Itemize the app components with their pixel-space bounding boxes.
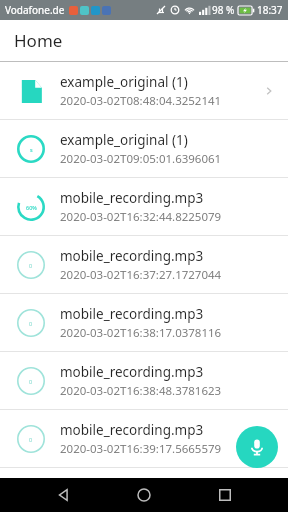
other: Open xyxy=(260,82,278,100)
button[interactable]: 0 xyxy=(0,410,288,468)
staticText: 18:37 xyxy=(257,3,283,17)
staticText: 2020-03-02T16:32:44.8225079 xyxy=(60,209,222,225)
button[interactable]: Back xyxy=(47,478,81,512)
button[interactable]: 0 xyxy=(0,294,288,352)
staticText: Home xyxy=(14,29,63,52)
staticText: example_original (1) xyxy=(60,131,188,149)
staticText: mobile_recording.mp3 xyxy=(60,363,204,381)
staticText: mobile_recording.mp3 xyxy=(60,247,204,265)
staticText: 2020-03-02T08:48:04.3252141 xyxy=(60,93,222,109)
staticText: 0 xyxy=(29,320,33,327)
staticText: 2020-03-02T16:39:17.5665579 xyxy=(60,441,222,457)
button[interactable]: s xyxy=(0,120,288,178)
button[interactable]: Recent apps xyxy=(208,478,242,512)
button[interactable]: Home xyxy=(127,478,161,512)
staticText: 2020-03-02T16:38:48.3781623 xyxy=(60,383,222,399)
button[interactable]: Record xyxy=(236,426,278,468)
staticText: mobile_recording.mp3 xyxy=(60,189,204,207)
staticText: 0 xyxy=(29,262,33,269)
staticText: mobile_recording.mp3 xyxy=(60,421,204,439)
staticText: 60% xyxy=(26,204,37,211)
staticText: example_original (1) xyxy=(60,73,188,91)
button[interactable]: 60% xyxy=(0,178,288,236)
staticText: Vodafone.de xyxy=(5,3,65,17)
staticText: 0 xyxy=(29,378,33,385)
staticText: 0 xyxy=(29,436,33,443)
staticText: 98 % xyxy=(212,3,235,17)
staticText: 2020-03-02T09:05:01.6396061 xyxy=(60,151,222,167)
staticText: 2020-03-02T16:37:27.1727044 xyxy=(60,267,222,283)
button[interactable]: 0 xyxy=(0,236,288,294)
button[interactable]: 0 xyxy=(0,352,288,410)
staticText: 2020-03-02T16:38:17.0378116 xyxy=(60,325,222,341)
staticText: s xyxy=(30,146,33,153)
button[interactable]: example_original (1) xyxy=(0,62,288,120)
staticText: mobile_recording.mp3 xyxy=(60,305,204,323)
